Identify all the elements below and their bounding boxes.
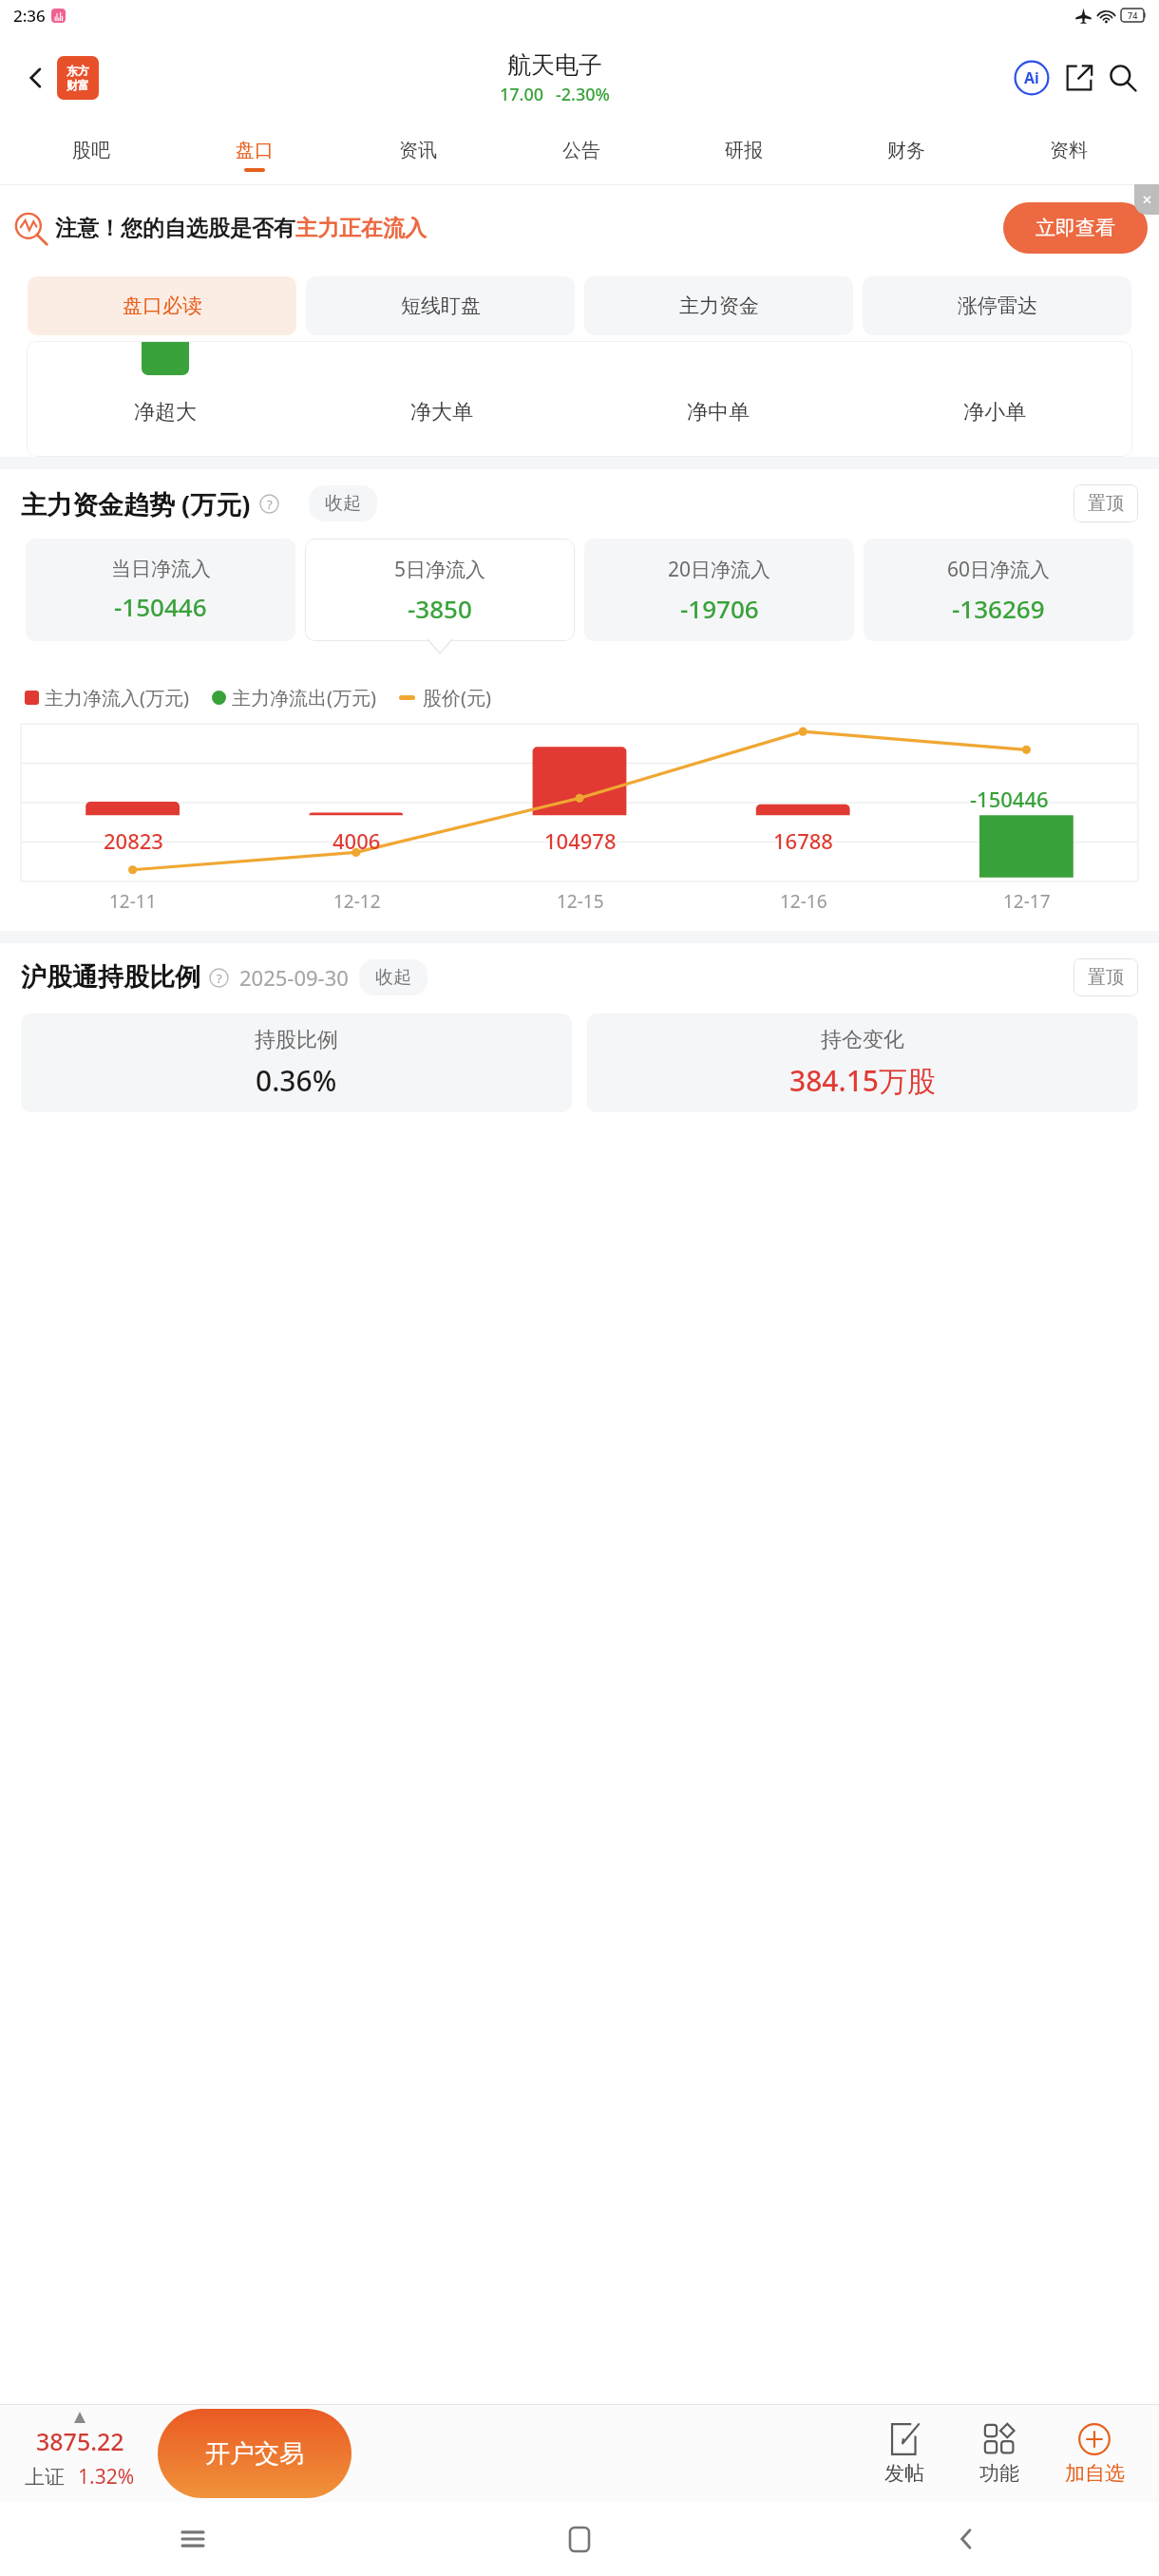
- staticText: 研报: [725, 139, 763, 162]
- staticText: 1.32%: [78, 2463, 135, 2491]
- staticText: 16788: [773, 826, 833, 855]
- button[interactable]: 开户交易: [158, 2409, 351, 2498]
- button[interactable]: 盘口必读: [28, 276, 296, 335]
- staticText: 东方: [66, 64, 89, 78]
- button[interactable]: 短线盯盘: [306, 276, 575, 335]
- button[interactable]: 置顶: [1073, 958, 1138, 996]
- button[interactable]: 资料: [987, 125, 1149, 184]
- button[interactable]: 60日净流入: [864, 539, 1133, 641]
- staticText: 盘口: [236, 139, 274, 162]
- button[interactable]: 当日净流入: [26, 539, 295, 641]
- staticText: 主力正在流入: [295, 215, 427, 242]
- button[interactable]: 20日净流入: [584, 539, 854, 641]
- staticText: 20日净流入: [668, 556, 771, 583]
- button[interactable]: 公告: [500, 125, 662, 184]
- button[interactable]: 持仓变化: [587, 1013, 1138, 1112]
- staticText: -150446: [114, 590, 207, 623]
- staticText: 20823: [104, 826, 163, 855]
- staticText: 60日净流入: [947, 556, 1051, 583]
- staticText: 当日净流入: [111, 557, 211, 581]
- button[interactable]: 持股比例: [21, 1013, 572, 1112]
- staticText: -19706: [680, 592, 759, 625]
- staticText: 发帖: [884, 2461, 924, 2486]
- staticText: 3875.22: [36, 2425, 124, 2457]
- staticText: 5日净流入: [394, 556, 486, 583]
- staticText: -150446: [970, 785, 1049, 813]
- staticText: 净大单: [410, 399, 473, 426]
- button[interactable]: 5日净流入: [305, 539, 575, 641]
- button[interactable]: Share: [1058, 57, 1100, 99]
- staticText: 置顶: [1088, 966, 1124, 989]
- staticText: ?: [267, 496, 273, 513]
- button[interactable]: 功能: [952, 2405, 1047, 2502]
- button[interactable]: 收起: [309, 485, 377, 521]
- button[interactable]: 发帖: [857, 2405, 952, 2502]
- button[interactable]: Search: [1102, 57, 1144, 99]
- staticText: 2:36: [13, 5, 46, 27]
- button[interactable]: 净超大: [27, 341, 1132, 457]
- staticText: 净小单: [963, 399, 1026, 426]
- button[interactable]: 股吧: [9, 125, 173, 184]
- staticText: 主力净流入(万元): [45, 685, 189, 710]
- staticText: 384.15万股: [789, 1061, 936, 1100]
- staticText: 持仓变化: [821, 1027, 904, 1053]
- staticText: 盘口必读: [123, 294, 202, 318]
- staticText: Ai: [1024, 67, 1039, 88]
- button[interactable]: East Money: [57, 56, 99, 100]
- staticText: 74: [1128, 9, 1138, 21]
- staticText: 财务: [887, 139, 925, 162]
- staticText: 持股比例: [255, 1027, 338, 1053]
- button[interactable]: 加自选: [1047, 2405, 1142, 2502]
- staticText: 资料: [1050, 139, 1088, 162]
- staticText: 12-17: [1003, 889, 1051, 914]
- staticText: 104978: [544, 826, 617, 855]
- staticText: 开户交易: [205, 2438, 304, 2470]
- staticText: 股价(元): [423, 685, 491, 710]
- button[interactable]: 财务: [825, 125, 987, 184]
- button[interactable]: Close: [1134, 184, 1159, 215]
- staticText: 注意！您的自选股是否有: [55, 215, 295, 242]
- staticText: 收起: [325, 492, 361, 515]
- button[interactable]: Back: [15, 57, 57, 99]
- staticText: 2025-09-30: [239, 963, 349, 992]
- staticText: 公告: [562, 139, 600, 162]
- staticText: 沪股通持股比例: [21, 961, 200, 994]
- staticText: 加自选: [1065, 2461, 1125, 2486]
- staticText: 涨停雷达: [958, 294, 1037, 318]
- button[interactable]: 资讯: [336, 125, 500, 184]
- button[interactable]: 盘口: [173, 125, 336, 184]
- button[interactable]: 3875.22: [13, 2417, 146, 2491]
- button[interactable]: AI: [1011, 57, 1053, 99]
- button[interactable]: 涨停雷达: [863, 276, 1131, 335]
- staticText: 主力资金: [679, 294, 759, 318]
- button[interactable]: 收起: [359, 959, 427, 995]
- button[interactable]: 研报: [662, 125, 825, 184]
- button[interactable]: 置顶: [1073, 484, 1138, 522]
- staticText: 航天电子: [507, 50, 602, 80]
- staticText: 4006: [332, 826, 381, 855]
- staticText: 收起: [375, 966, 411, 989]
- staticText: -2.30%: [556, 83, 610, 106]
- staticText: 12-11: [109, 889, 157, 914]
- button[interactable]: 立即查看: [1003, 202, 1148, 254]
- staticText: 12-16: [780, 889, 827, 914]
- staticText: 功能: [979, 2461, 1019, 2486]
- staticText: 资讯: [399, 139, 437, 162]
- staticText: 短线盯盘: [401, 294, 481, 318]
- button[interactable]: 主力资金: [584, 276, 853, 335]
- staticText: 置顶: [1088, 492, 1124, 515]
- staticText: 12-15: [557, 889, 604, 914]
- staticText: 0.36%: [256, 1061, 337, 1100]
- staticText: 净中单: [687, 399, 750, 426]
- staticText: -3850: [408, 592, 472, 625]
- staticText: 净超大: [134, 399, 197, 426]
- staticText: 主力净流出(万元): [232, 685, 376, 710]
